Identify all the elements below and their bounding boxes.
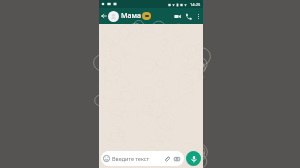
- staticText: Мама: [121, 11, 141, 21]
- staticText: Введите текст: [112, 155, 163, 162]
- button[interactable]: More options: [194, 8, 202, 24]
- button[interactable]: Video call: [172, 8, 183, 24]
- button[interactable]: Мама: [108, 8, 172, 24]
- staticText: 14:25: [190, 2, 201, 7]
- button[interactable]: Camera: [173, 155, 181, 163]
- button[interactable]: Record voice message: [186, 151, 201, 166]
- button[interactable]: Введите текст: [101, 151, 184, 166]
- button[interactable]: Back: [100, 8, 108, 24]
- button[interactable]: Call: [183, 8, 194, 24]
- button[interactable]: Attach: [163, 155, 171, 163]
